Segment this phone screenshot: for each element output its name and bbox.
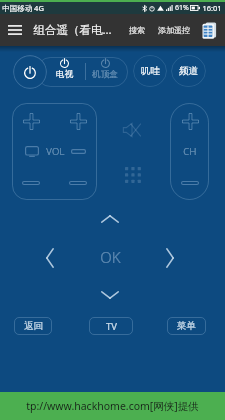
- button[interactable]: Power: [13, 55, 47, 89]
- button[interactable]: My remotes: [196, 14, 222, 46]
- button[interactable]: 返回: [14, 317, 52, 335]
- button[interactable]: Left: [37, 244, 63, 272]
- button[interactable]: Volume up: [17, 107, 45, 135]
- button[interactable]: 电视: [50, 58, 78, 84]
- button[interactable]: 添加遥控: [154, 14, 194, 46]
- button[interactable]: Up: [96, 206, 124, 232]
- button[interactable]: Mute: [119, 117, 145, 143]
- button[interactable]: Volume down: [17, 170, 45, 196]
- button[interactable]: Number pad: [121, 163, 145, 187]
- staticText: TV: [106, 320, 117, 333]
- button[interactable]: 搜索: [125, 14, 149, 46]
- button[interactable]: Decrease: [64, 170, 92, 196]
- staticText: 组合遥（看电...: [33, 22, 112, 38]
- staticText: VOL: [46, 145, 65, 158]
- button[interactable]: 频道: [171, 55, 206, 87]
- staticText: tp://www.hackhome.com[网侠]提供: [26, 399, 199, 413]
- button[interactable]: OK: [88, 235, 132, 279]
- button[interactable]: Channel down: [176, 170, 204, 196]
- button[interactable]: Down: [96, 282, 124, 308]
- staticText: 叽哇: [141, 65, 160, 77]
- button[interactable]: Increase: [64, 107, 92, 135]
- button[interactable]: 机顶盒: [88, 58, 121, 84]
- button[interactable]: Menu: [0, 14, 30, 46]
- button[interactable]: TV: [89, 317, 133, 335]
- button[interactable]: 菜单: [167, 317, 206, 335]
- button[interactable]: 叽哇: [133, 55, 167, 87]
- staticText: 添加遥控: [158, 25, 190, 35]
- button[interactable]: Right: [157, 244, 183, 272]
- staticText: 菜单: [177, 320, 196, 332]
- staticText: OK: [100, 247, 121, 267]
- staticText: 61%: [175, 3, 189, 13]
- staticText: 返回: [24, 320, 43, 332]
- staticText: 16:01: [202, 3, 222, 13]
- button[interactable]: Channel up: [176, 107, 204, 135]
- staticText: 频道: [179, 65, 198, 77]
- staticText: CH: [183, 145, 197, 158]
- staticText: 机顶盒: [92, 69, 118, 80]
- staticText: 中国移动 4G: [2, 3, 44, 13]
- staticText: 电视: [56, 69, 73, 80]
- staticText: 搜索: [129, 25, 145, 35]
